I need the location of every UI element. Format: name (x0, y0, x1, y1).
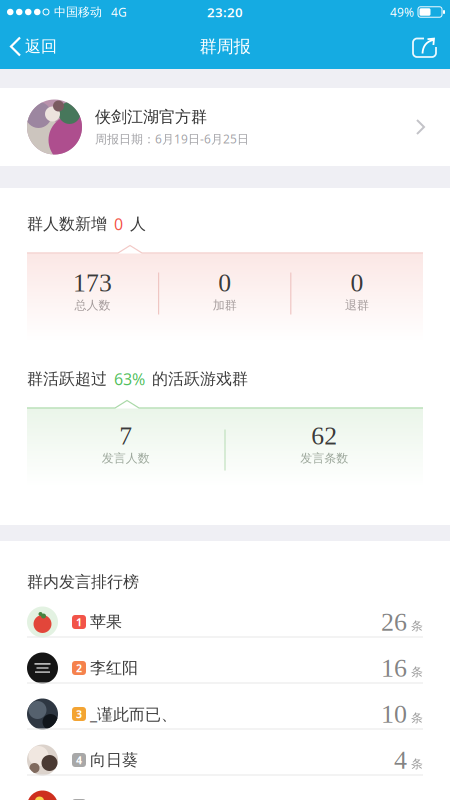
staticText: 7 (119, 421, 132, 450)
staticText: 周报日期：6月19日-6月25日 (95, 131, 249, 147)
button[interactable]: 分享 (412, 34, 438, 59)
staticText: 的活跃游戏群 (147, 369, 248, 389)
button[interactable]: 3 (0, 691, 450, 737)
staticText: 加群 (213, 298, 237, 313)
staticText: 侠剑江湖官方群 (95, 107, 207, 127)
staticText: 条 (411, 619, 423, 633)
staticText: 返回 (25, 37, 57, 56)
staticText: 63% (114, 368, 145, 390)
staticText: 向日葵 (90, 750, 138, 770)
staticText: _谨此而已、 (90, 703, 177, 725)
staticText: 群周报 (199, 36, 250, 57)
button[interactable]: 4 (0, 737, 450, 783)
staticText: 4G (111, 4, 127, 20)
button[interactable]: 5 (0, 783, 450, 800)
staticText: 4 (76, 753, 82, 767)
staticText: 总人数 (74, 298, 110, 313)
staticText: 群人数新增 (27, 214, 112, 234)
staticText: 苹果 (90, 612, 122, 632)
staticText: 26 (381, 608, 407, 636)
staticText: 发言人数 (102, 451, 150, 466)
staticText: 条 (411, 665, 423, 679)
staticText: 173 (73, 268, 112, 297)
staticText: 人 (125, 214, 146, 234)
staticText: 0 (218, 268, 231, 297)
staticText: 中国移动 (54, 5, 102, 19)
staticText: 群活跃超过 (27, 369, 112, 389)
staticText: 退群 (345, 298, 369, 313)
staticText: 发言条数 (300, 451, 348, 466)
staticText: 0 (350, 268, 363, 297)
staticText: 23:20 (207, 3, 243, 21)
staticText: 4 (394, 746, 407, 774)
button[interactable]: 侠剑江湖官方群 (0, 88, 450, 166)
staticText: 1 (76, 615, 82, 629)
staticText: 16 (381, 654, 407, 682)
button[interactable]: 1 (0, 599, 450, 645)
staticText: 49% (390, 4, 414, 20)
staticText: 李红阳 (90, 658, 138, 678)
staticText: 2 (76, 661, 82, 675)
staticText: 3 (76, 707, 82, 721)
staticText: 条 (411, 757, 423, 771)
button[interactable]: 返回 (9, 36, 57, 57)
staticText: 10 (381, 700, 407, 728)
button[interactable]: 2 (0, 645, 450, 691)
staticText: 0 (114, 213, 123, 235)
staticText: 62 (311, 421, 337, 450)
staticText: 条 (411, 711, 423, 725)
staticText: 群内发言排行榜 (27, 572, 139, 592)
